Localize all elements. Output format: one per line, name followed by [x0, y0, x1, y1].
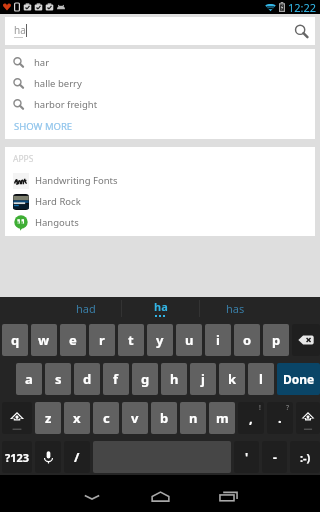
button[interactable]: a — [16, 363, 42, 395]
button[interactable]: b — [151, 402, 177, 434]
staticText: ?123 — [5, 450, 30, 465]
staticText: n — [189, 409, 198, 427]
button[interactable]: :-) — [290, 441, 320, 473]
staticText: t — [128, 331, 134, 349]
staticText: g — [141, 370, 150, 388]
staticText: harbor freight — [34, 98, 98, 111]
button[interactable]: ?123 — [2, 441, 32, 473]
button[interactable]: p — [263, 324, 289, 356]
button[interactable]: n — [180, 402, 206, 434]
button[interactable]: g — [132, 363, 158, 395]
staticText: l — [259, 370, 263, 388]
staticText: ' — [245, 449, 249, 465]
staticText: halle berry — [34, 77, 82, 90]
button[interactable]: SHOW MORE — [5, 115, 315, 137]
staticText: h — [170, 370, 179, 388]
button[interactable]: / — [64, 441, 90, 473]
staticText: :-) — [300, 450, 311, 465]
button[interactable]: ! — [238, 402, 264, 434]
button[interactable]: y — [147, 324, 173, 356]
staticText: APPS — [13, 153, 34, 165]
staticText: z — [45, 409, 52, 427]
button[interactable]: ' — [234, 441, 259, 473]
button[interactable]: m — [209, 402, 235, 434]
staticText: w — [38, 331, 50, 349]
staticText: ha — [14, 23, 26, 37]
button[interactable]: Handwriting Fonts — [5, 170, 315, 191]
button[interactable]: q — [2, 324, 28, 356]
staticText: x — [73, 409, 81, 427]
button[interactable]: f — [103, 363, 129, 395]
button[interactable]: Done — [277, 363, 320, 395]
staticText: Handwriting Fonts — [35, 174, 118, 187]
staticText: o — [243, 331, 252, 349]
staticText: s — [55, 370, 62, 388]
button[interactable]: - — [262, 441, 287, 473]
staticText: b — [160, 409, 169, 427]
button[interactable]: x — [64, 402, 90, 434]
button[interactable]: Hide keyboard — [58, 475, 126, 512]
button[interactable]: i — [205, 324, 231, 356]
button[interactable]: j — [190, 363, 216, 395]
staticText: ha — [154, 299, 168, 314]
staticText: p — [272, 331, 281, 349]
staticText: j — [201, 370, 205, 388]
button[interactable]: Voice input — [35, 441, 61, 473]
button[interactable]: Shift — [296, 402, 320, 434]
staticText: - — [273, 449, 277, 465]
button[interactable]: halle berry — [5, 73, 315, 94]
staticText: q — [11, 331, 20, 349]
button[interactable]: had — [48, 297, 123, 320]
button[interactable]: ha — [123, 297, 198, 320]
button[interactable]: d — [74, 363, 100, 395]
button[interactable]: har — [5, 52, 315, 73]
button[interactable]: ? — [267, 402, 293, 434]
staticText: had — [76, 301, 96, 316]
button[interactable]: s — [45, 363, 71, 395]
staticText: Hard Rock — [35, 195, 81, 208]
button[interactable]: harbor freight — [5, 94, 315, 115]
staticText: / — [74, 448, 80, 466]
staticText: , — [249, 409, 253, 427]
button[interactable]: k — [219, 363, 245, 395]
staticText: Done — [283, 371, 315, 387]
button[interactable]: o — [234, 324, 260, 356]
staticText: har — [34, 56, 50, 69]
staticText: y — [156, 331, 164, 349]
staticText: ! — [259, 403, 261, 413]
button[interactable]: Home — [126, 475, 194, 512]
staticText: Hangouts — [35, 216, 79, 229]
button[interactable]: Hard Rock — [5, 191, 315, 212]
button[interactable]: Backspace — [292, 324, 320, 356]
button[interactable]: ha — [5, 17, 315, 45]
staticText: k — [228, 370, 237, 388]
staticText: . — [278, 409, 282, 427]
staticText: c — [103, 409, 110, 427]
button[interactable]: h — [161, 363, 187, 395]
button[interactable]: v — [122, 402, 148, 434]
button[interactable]: Hangouts — [5, 212, 315, 233]
staticText: u — [185, 331, 194, 349]
staticText: r — [99, 331, 105, 349]
button[interactable]: Shift — [2, 402, 32, 434]
staticText: m — [216, 409, 229, 427]
staticText: f — [113, 370, 119, 388]
staticText: e — [69, 331, 77, 349]
button[interactable]: w — [31, 324, 57, 356]
button[interactable]: u — [176, 324, 202, 356]
button[interactable]: Recent apps — [194, 475, 262, 512]
staticText: ? — [286, 403, 290, 413]
button[interactable]: r — [89, 324, 115, 356]
button[interactable]: e — [60, 324, 86, 356]
staticText: d — [83, 370, 92, 388]
button[interactable]: z — [35, 402, 61, 434]
staticText: 12:22 — [288, 0, 317, 14]
staticText: a — [25, 370, 33, 388]
button[interactable]: has — [198, 297, 273, 320]
staticText: SHOW MORE — [14, 120, 73, 133]
button[interactable]: t — [118, 324, 144, 356]
staticText: v — [131, 409, 139, 427]
button[interactable]: c — [93, 402, 119, 434]
button[interactable]: l — [248, 363, 274, 395]
